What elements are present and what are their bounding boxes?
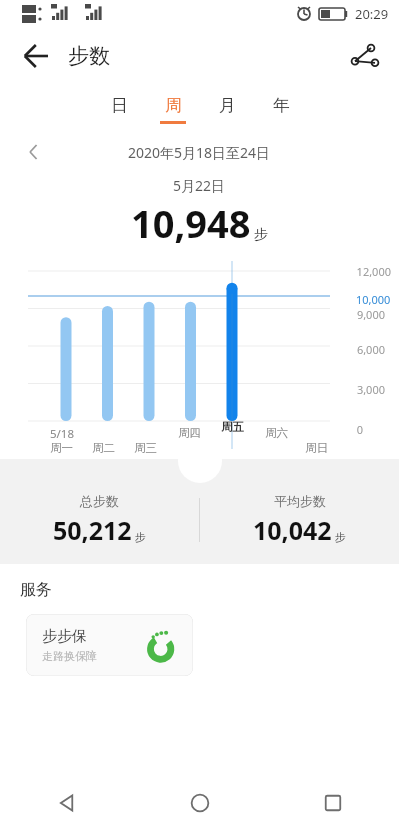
button[interactable]: 步步保 (26, 614, 193, 676)
staticText: 平均步数 (274, 493, 326, 509)
staticText: 周 (165, 95, 182, 116)
button[interactable]: Back (16, 36, 56, 76)
staticText: 12,000 (356, 264, 391, 279)
staticText: 周六 (265, 426, 288, 440)
staticText: 步步保 (42, 627, 87, 646)
button[interactable]: 月 (200, 86, 254, 132)
staticText: 总步数 (80, 493, 119, 509)
staticText: 10,948 (131, 197, 251, 249)
staticText: 9,000 (356, 307, 385, 322)
button[interactable]: 年 (254, 86, 308, 132)
staticText: 10,000 (356, 292, 391, 307)
staticText: 周三 (134, 441, 157, 455)
staticText: 50,212 (53, 513, 132, 547)
staticText: 10,042 (253, 513, 332, 547)
staticText: 步 (254, 226, 268, 244)
staticText: 步 (335, 530, 346, 544)
button[interactable]: 日 (92, 86, 146, 132)
staticText: 2020年5月18日至24日 (128, 143, 271, 162)
staticText: 走路换保障 (42, 649, 97, 663)
button[interactable]: Share (343, 36, 383, 76)
staticText: 周四 (178, 426, 201, 440)
button[interactable]: 总步数 (0, 493, 199, 547)
staticText: 周二 (92, 441, 115, 455)
staticText: 日 (111, 95, 128, 116)
staticText: 周日 (305, 441, 328, 455)
staticText: 3,000 (356, 382, 385, 397)
button[interactable]: Back (0, 778, 133, 828)
staticText: 0 (356, 422, 363, 437)
staticText: 服务 (20, 580, 52, 600)
staticText: 月 (219, 95, 236, 116)
staticText: 5/18 (50, 426, 75, 442)
staticText: 20:29 (355, 5, 389, 23)
button[interactable]: 周 (146, 86, 200, 132)
staticText: 步 (135, 530, 146, 544)
button[interactable]: Recent apps (266, 778, 399, 828)
staticText: 周一 (50, 441, 73, 455)
staticText: 周五 (221, 420, 244, 434)
staticText: 年 (273, 95, 290, 116)
staticText: 步数 (68, 43, 110, 69)
staticText: 6,000 (356, 342, 385, 357)
button[interactable]: Previous week (18, 136, 50, 168)
button[interactable]: Home (133, 778, 266, 828)
staticText: 5月22日 (173, 176, 226, 195)
button[interactable]: 平均步数 (200, 493, 399, 547)
